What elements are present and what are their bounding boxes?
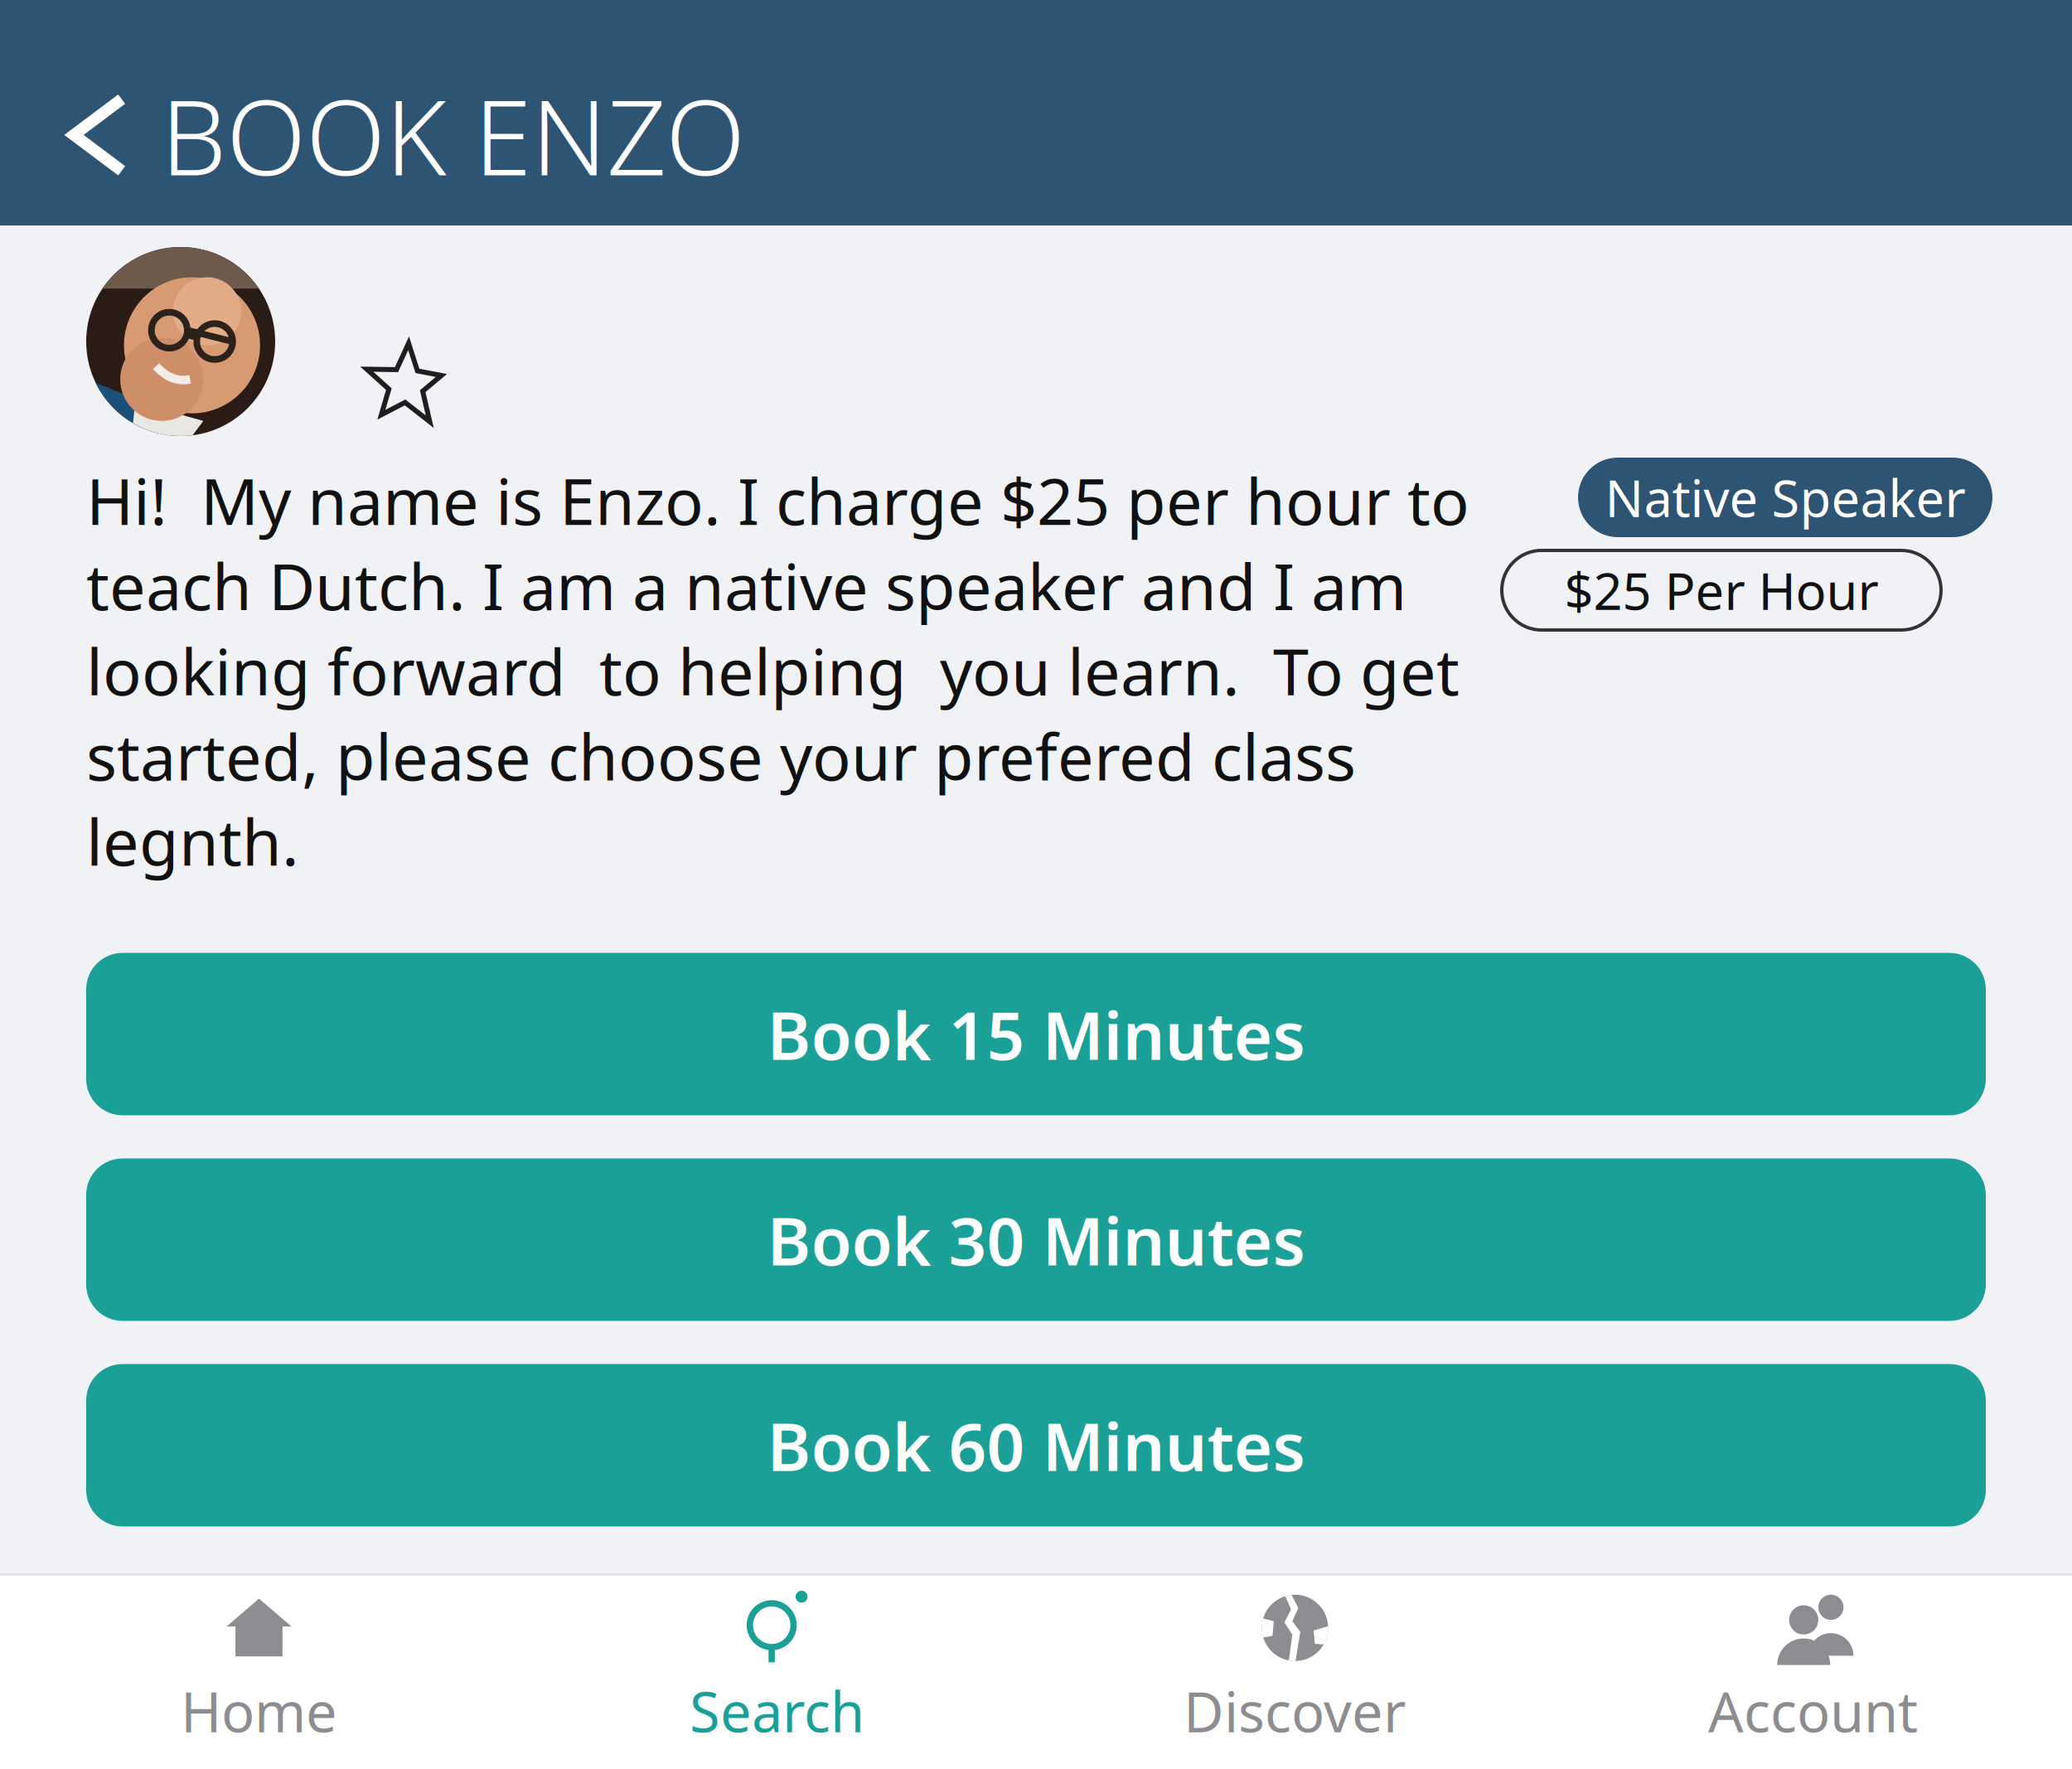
button[interactable]: Search [518,1573,1036,1769]
button[interactable]: Book 60 Minutes [86,1364,1986,1527]
button[interactable]: Discover [1036,1573,1554,1769]
button[interactable]: Book 30 Minutes [86,1158,1986,1321]
staticText: Book 15 Minutes [767,990,1305,1078]
staticText: Search [690,1674,864,1748]
button[interactable]: Home [0,1573,518,1769]
button[interactable]: Favourite [355,333,457,436]
staticText: Hi! My name is Enzo. I charge $25 per ho… [86,458,1469,883]
button[interactable]: Book 15 Minutes [86,953,1986,1115]
staticText: BOOK ENZO [161,66,745,204]
staticText: Discover [1184,1674,1406,1748]
button[interactable]: Account [1554,1573,2072,1769]
staticText: $25 Per Hour [1564,556,1878,624]
staticText: Home [181,1674,337,1748]
staticText: Book 30 Minutes [767,1196,1305,1284]
staticText: Account [1708,1674,1918,1748]
staticText: Native Speaker [1605,464,1965,531]
staticText: Book 60 Minutes [767,1401,1305,1489]
button[interactable]: Back [48,85,148,185]
